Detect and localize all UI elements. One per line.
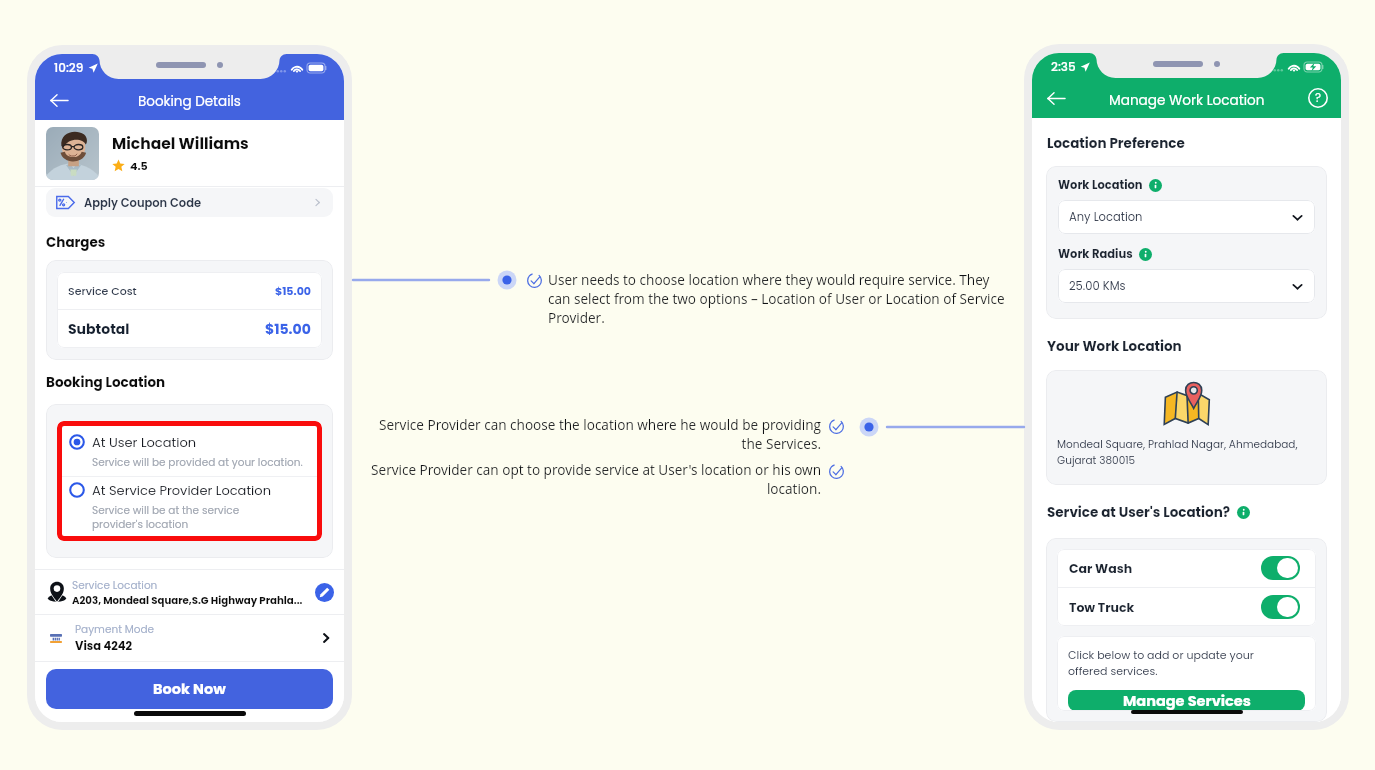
staticText: Car Wash — [1069, 560, 1133, 577]
staticText: Book Now — [153, 679, 226, 699]
button[interactable]: Edit service location — [315, 583, 334, 602]
staticText: 10:29 — [54, 59, 84, 76]
staticText: Service Location — [72, 578, 158, 593]
staticText: Service Provider can opt to provide serv… — [359, 460, 821, 498]
staticText: Michael Williams — [112, 133, 249, 155]
staticText: Subtotal — [68, 319, 130, 339]
staticText: Service Provider can choose the location… — [359, 415, 821, 453]
staticText: 4.5 — [130, 158, 148, 173]
button[interactable]: Tow Truck — [1057, 588, 1316, 626]
staticText: Payment Mode — [75, 622, 155, 637]
button[interactable]: At User Location — [62, 426, 317, 476]
staticText: Click below to add or update your offere… — [1068, 647, 1254, 679]
button[interactable]: 25.00 KMs — [1058, 269, 1315, 303]
button[interactable]: Back — [1044, 86, 1068, 110]
staticText: Service will be at the service provider'… — [92, 503, 240, 532]
staticText: Tow Truck — [1069, 599, 1135, 616]
staticText: At User Location — [92, 433, 197, 451]
button[interactable]: Car Wash — [1057, 549, 1316, 587]
staticText: ? — [1315, 90, 1322, 106]
staticText: Service will be provided at your locatio… — [92, 455, 303, 470]
staticText: Manage Services — [1123, 691, 1251, 711]
button[interactable]: Book Now — [46, 669, 333, 709]
staticText: At Service Provider Location — [92, 481, 271, 499]
staticText: User needs to choose location where they… — [548, 270, 1010, 327]
staticText: Service Cost — [68, 283, 137, 298]
staticText: $15.00 — [275, 283, 311, 298]
staticText: Any Location — [1069, 209, 1143, 225]
button[interactable]: Any Location — [1058, 200, 1315, 234]
staticText: Your Work Location — [1047, 337, 1182, 356]
button[interactable]: Help — [1308, 88, 1328, 108]
staticText: $15.00 — [265, 319, 311, 339]
staticText: 25.00 KMs — [1069, 278, 1126, 294]
button[interactable]: Service Location — [35, 570, 344, 614]
staticText: A203, Mondeal Square,S.G Highway Prahla.… — [72, 593, 303, 607]
staticText: Work Radius — [1058, 246, 1133, 262]
button[interactable]: At Service Provider Location — [62, 477, 317, 536]
staticText: Apply Coupon Code — [84, 195, 202, 211]
button[interactable]: Apply Coupon Code — [46, 188, 333, 217]
staticText: Work Location — [1058, 177, 1143, 193]
button[interactable]: Back — [47, 88, 71, 112]
staticText: Visa 4242 — [75, 638, 133, 654]
staticText: Service at User's Location? — [1047, 503, 1231, 522]
staticText: Manage Work Location — [1109, 91, 1265, 110]
staticText: Booking Details — [138, 92, 241, 111]
staticText: Booking Location — [46, 373, 166, 392]
button[interactable]: Manage Services — [1068, 690, 1305, 711]
staticText: Location Preference — [1047, 134, 1185, 153]
staticText: Charges — [46, 233, 106, 252]
staticText: Mondeal Square, Prahlad Nagar, Ahmedabad… — [1057, 437, 1298, 467]
staticText: 2:35 — [1051, 58, 1076, 75]
button[interactable]: Payment Mode — [35, 615, 344, 661]
